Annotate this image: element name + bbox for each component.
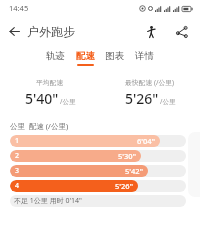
- button[interactable]: Back: [5, 21, 79, 42]
- button[interactable]: 4: [10, 180, 186, 192]
- staticText: 6'04": [137, 136, 155, 146]
- staticText: 3: [15, 166, 20, 176]
- staticText: 户外跑步: [27, 24, 75, 39]
- staticText: 公里 配速 (/公里): [10, 121, 69, 131]
- staticText: 不足 1公里 用时 0'14": [14, 196, 82, 206]
- staticText: 1: [15, 136, 20, 146]
- staticText: 5'26": [125, 89, 159, 108]
- staticText: 图表: [105, 50, 124, 62]
- staticText: 轨迹: [46, 50, 65, 62]
- staticText: 最快配速 (/公里): [125, 78, 175, 87]
- button[interactable]: 图表: [103, 49, 126, 67]
- staticText: 平均配速: [36, 78, 64, 87]
- button[interactable]: Share: [172, 22, 191, 41]
- staticText: /公里: [60, 97, 76, 106]
- staticText: 5'26": [115, 181, 133, 191]
- button[interactable]: 3: [10, 165, 186, 177]
- button[interactable]: 2: [10, 150, 186, 162]
- button[interactable]: 详情: [133, 49, 156, 67]
- staticText: 4: [15, 181, 20, 191]
- button[interactable]: 轨迹: [44, 49, 67, 67]
- button[interactable]: Sport type: [142, 22, 161, 41]
- staticText: 2: [15, 151, 20, 161]
- staticText: 5'40": [25, 89, 59, 108]
- button[interactable]: 配速: [74, 49, 97, 67]
- staticText: 14:45: [9, 3, 29, 13]
- staticText: 5'30": [118, 151, 136, 161]
- button[interactable]: 不足 1公里 用时 0'14": [10, 195, 186, 207]
- button[interactable]: 1: [10, 135, 186, 147]
- staticText: 5'42": [125, 166, 143, 176]
- staticText: /公里: [160, 97, 176, 106]
- staticText: 配速: [76, 50, 95, 62]
- staticText: 详情: [135, 50, 154, 62]
